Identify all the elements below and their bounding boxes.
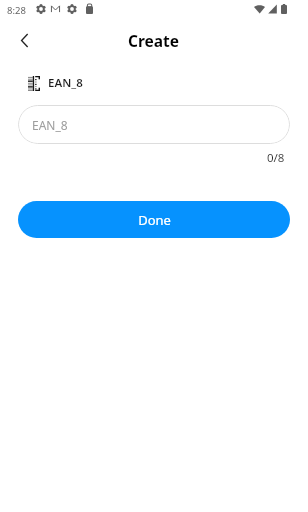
staticText: Create [128, 30, 180, 51]
staticText: EAN_8 [32, 117, 68, 133]
button[interactable]: EAN_8 [18, 105, 290, 144]
staticText: Done [138, 211, 171, 229]
button[interactable]: Back [7, 23, 41, 57]
button[interactable]: Done [18, 201, 290, 238]
staticText: 8:28 [7, 4, 26, 17]
staticText: EAN_8 [48, 75, 83, 91]
staticText: 0/8 [267, 150, 285, 166]
